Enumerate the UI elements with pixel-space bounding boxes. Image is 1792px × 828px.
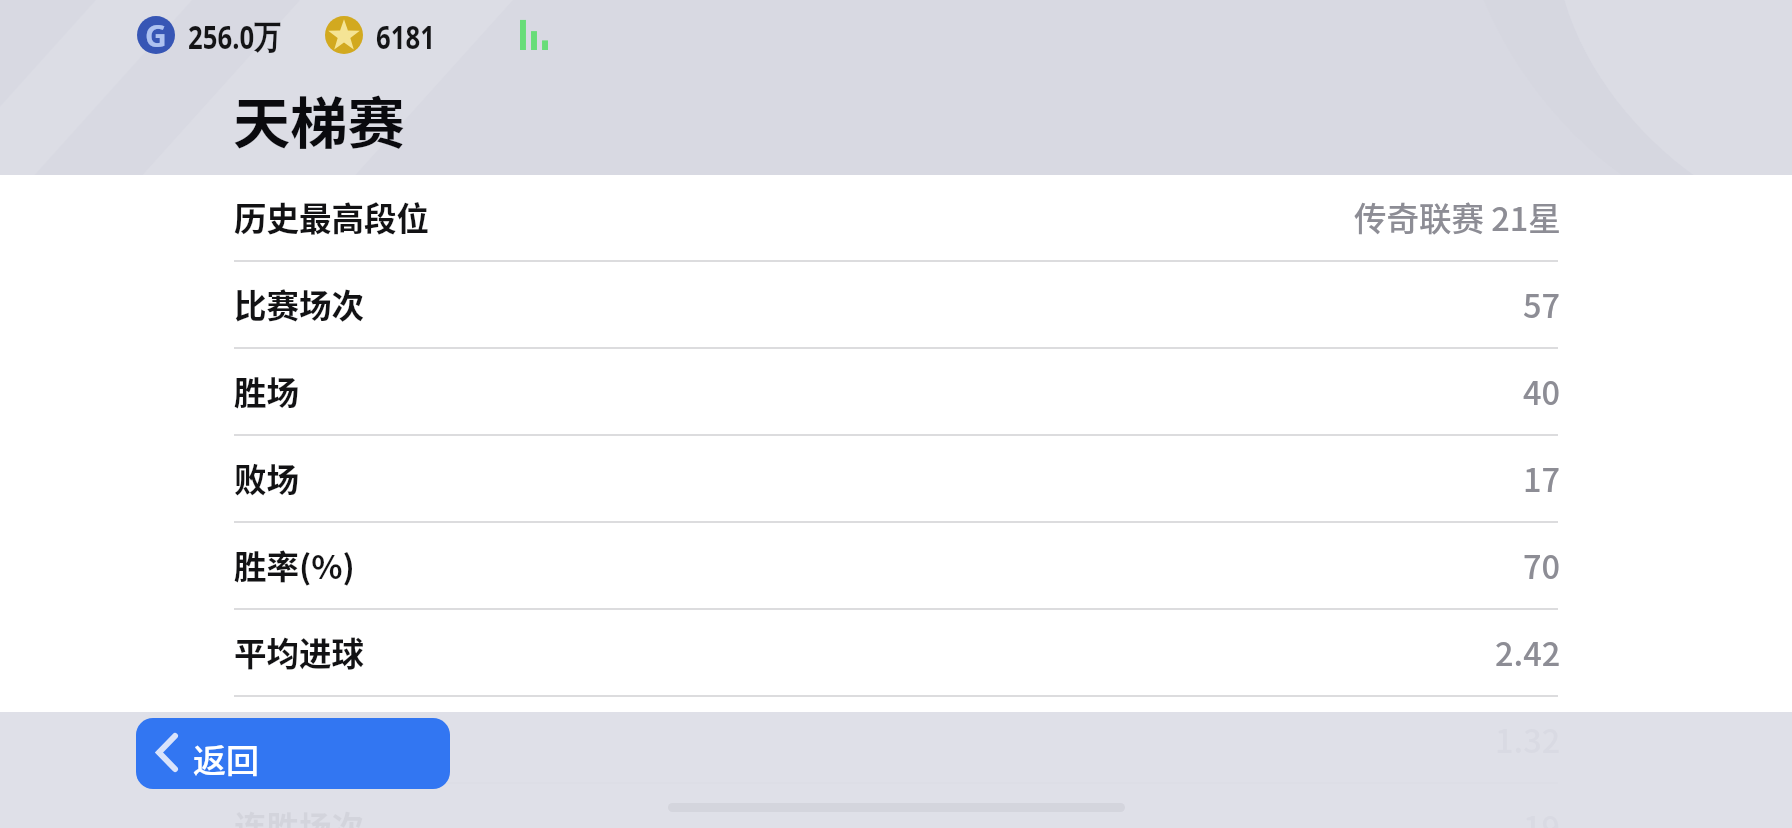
staticText: 天梯赛 [233,79,406,159]
staticText: 2.42 [1495,628,1561,675]
staticText: 胜率(%) [234,541,355,588]
staticText: 平均失球 [234,715,365,762]
button[interactable]: 连胜场次 [0,784,1792,828]
staticText: 败场 [234,454,300,501]
button[interactable]: 返回 [136,718,450,789]
staticText: 比赛场次 [234,280,365,327]
button[interactable]: 比赛场次 [0,262,1792,349]
staticText: 17 [1523,454,1561,501]
staticText: 平均进球 [234,628,365,675]
button[interactable]: Gems [137,16,175,54]
staticText: 历史最高段位 [234,193,430,240]
staticText: G [145,16,167,53]
button[interactable]: Stars [325,16,363,54]
staticText: 传奇联赛 21星 [1354,193,1561,240]
staticText: 57 [1523,280,1561,327]
staticText: 70 [1523,541,1561,588]
staticText: 256.0万 [188,14,280,59]
button[interactable]: 平均失球 [0,697,1792,784]
other: Network [520,18,549,50]
button[interactable]: 胜场 [0,349,1792,436]
button[interactable]: 胜率(%) [0,523,1792,610]
staticText: 连胜场次 [234,802,365,828]
staticText: 6181 [376,14,435,59]
staticText: 40 [1523,367,1561,414]
staticText: 返回 [193,735,259,783]
button[interactable]: 平均进球 [0,610,1792,697]
button[interactable]: 败场 [0,436,1792,523]
button[interactable]: 历史最高段位 [0,175,1792,262]
staticText: 胜场 [234,367,300,414]
